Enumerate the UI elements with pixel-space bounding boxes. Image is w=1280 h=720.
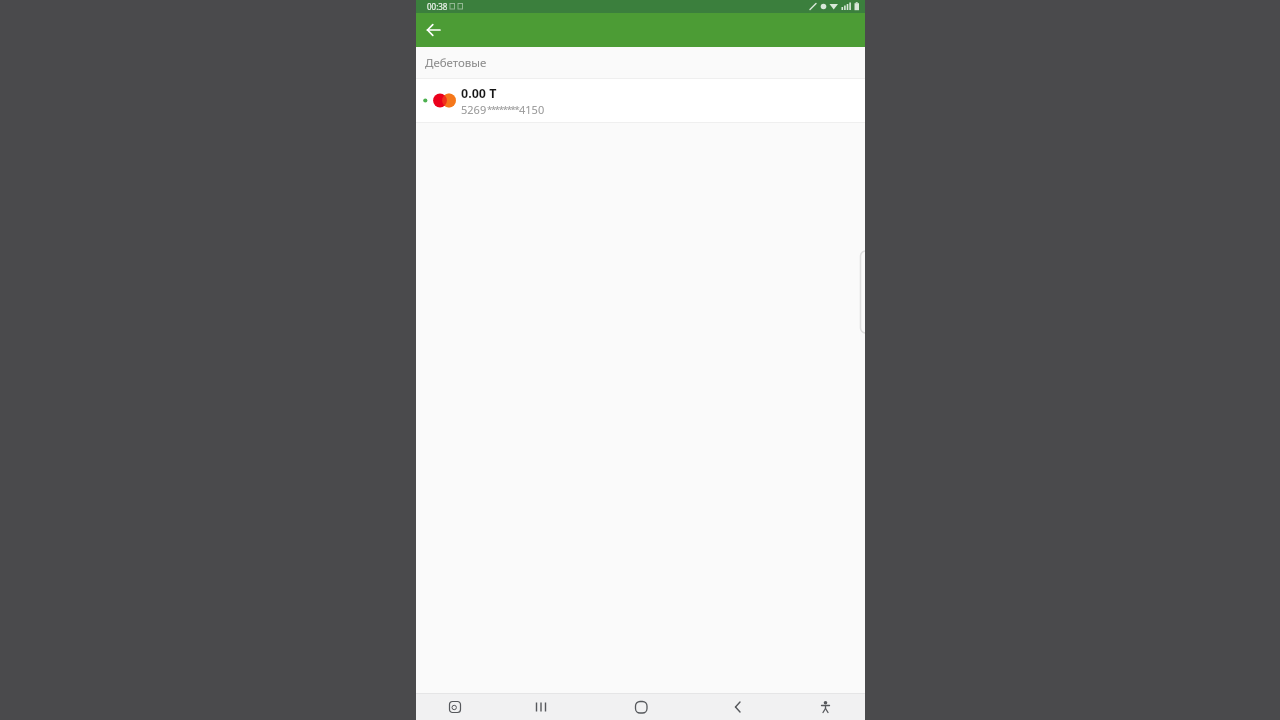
button[interactable] — [505, 693, 595, 720]
button[interactable] — [685, 693, 775, 720]
button[interactable] — [775, 693, 865, 720]
staticText: 0.00 Т — [461, 85, 497, 102]
staticText: Дебетовые — [425, 55, 487, 71]
staticText: 00:38 — [427, 1, 448, 12]
button[interactable] — [422, 18, 446, 42]
button[interactable]: 0.00 Т — [416, 79, 865, 122]
staticText: ******** — [487, 103, 519, 116]
button[interactable] — [416, 693, 505, 720]
staticText: 5269 — [461, 102, 487, 117]
button[interactable] — [595, 693, 685, 720]
staticText: 4150 — [519, 102, 545, 117]
